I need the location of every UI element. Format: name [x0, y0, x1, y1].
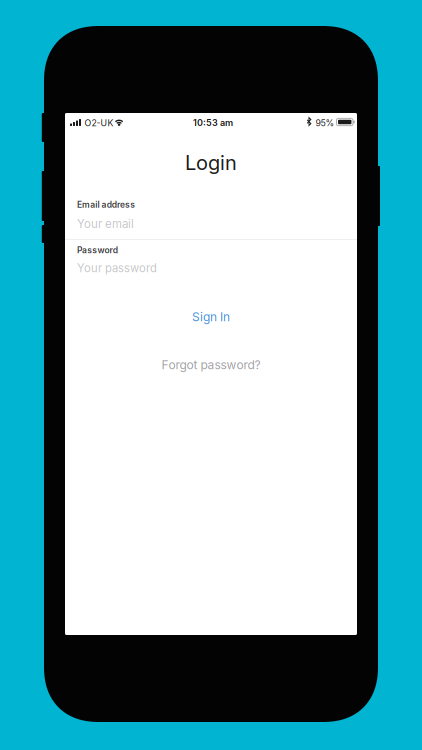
- button[interactable]: Sign In: [65, 307, 357, 327]
- staticText: O2-UK: [84, 118, 113, 128]
- staticText: Your password: [77, 261, 157, 275]
- staticText: 10:53 am: [193, 117, 233, 128]
- staticText: Email address: [77, 199, 135, 210]
- button[interactable]: Forgot password?: [65, 355, 357, 375]
- staticText: Login: [185, 150, 237, 175]
- staticText: Your email: [77, 217, 134, 231]
- staticText: Password: [77, 245, 118, 255]
- staticText: Sign In: [192, 310, 230, 324]
- staticText: 95%: [315, 118, 334, 128]
- staticText: Forgot password?: [161, 358, 260, 372]
